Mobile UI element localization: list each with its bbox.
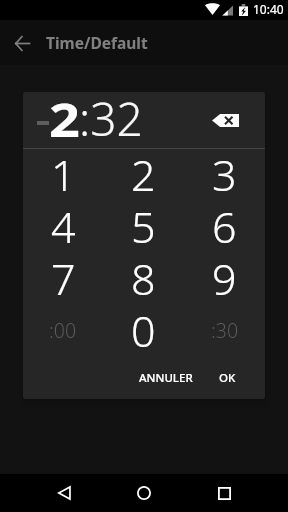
staticText: :30: [211, 317, 239, 344]
button[interactable]: 4: [23, 201, 103, 253]
button[interactable]: 5: [103, 201, 184, 253]
button[interactable]: 2: [103, 149, 184, 201]
staticText: :00: [49, 317, 77, 344]
staticText: 10:40: [253, 1, 284, 17]
button[interactable]: Home: [120, 474, 168, 512]
button[interactable]: 0: [103, 305, 184, 357]
button[interactable]: Back: [40, 474, 88, 512]
button[interactable]: 3: [184, 149, 265, 201]
button[interactable]: Back: [0, 21, 44, 65]
staticText: 5: [131, 197, 156, 249]
button[interactable]: Recents: [200, 474, 248, 512]
button[interactable]: ANNULER: [133, 364, 199, 392]
staticText: 4: [51, 197, 76, 249]
staticText: Time/Default: [46, 32, 148, 53]
staticText: 8: [131, 249, 156, 301]
staticText: OK: [219, 370, 236, 386]
button[interactable]: 7: [23, 253, 103, 305]
staticText: ANNULER: [139, 370, 193, 386]
button[interactable]: 9: [184, 253, 265, 305]
button[interactable]: OK: [213, 364, 242, 392]
staticText: 6: [212, 197, 237, 249]
staticText: 1: [51, 145, 76, 197]
staticText: 7: [51, 249, 76, 301]
staticText: :32: [79, 92, 143, 143]
button[interactable]: 8: [103, 253, 184, 305]
button[interactable]: :30: [184, 305, 265, 357]
staticText: 3: [212, 145, 237, 197]
staticText: 9: [212, 249, 237, 301]
staticText: 2: [49, 92, 80, 143]
staticText: 0: [131, 301, 156, 353]
button[interactable]: :00: [23, 305, 103, 357]
button[interactable]: Backspace: [205, 100, 245, 140]
button[interactable]: 6: [184, 201, 265, 253]
staticText: 2: [131, 145, 156, 197]
button[interactable]: 1: [23, 149, 103, 201]
